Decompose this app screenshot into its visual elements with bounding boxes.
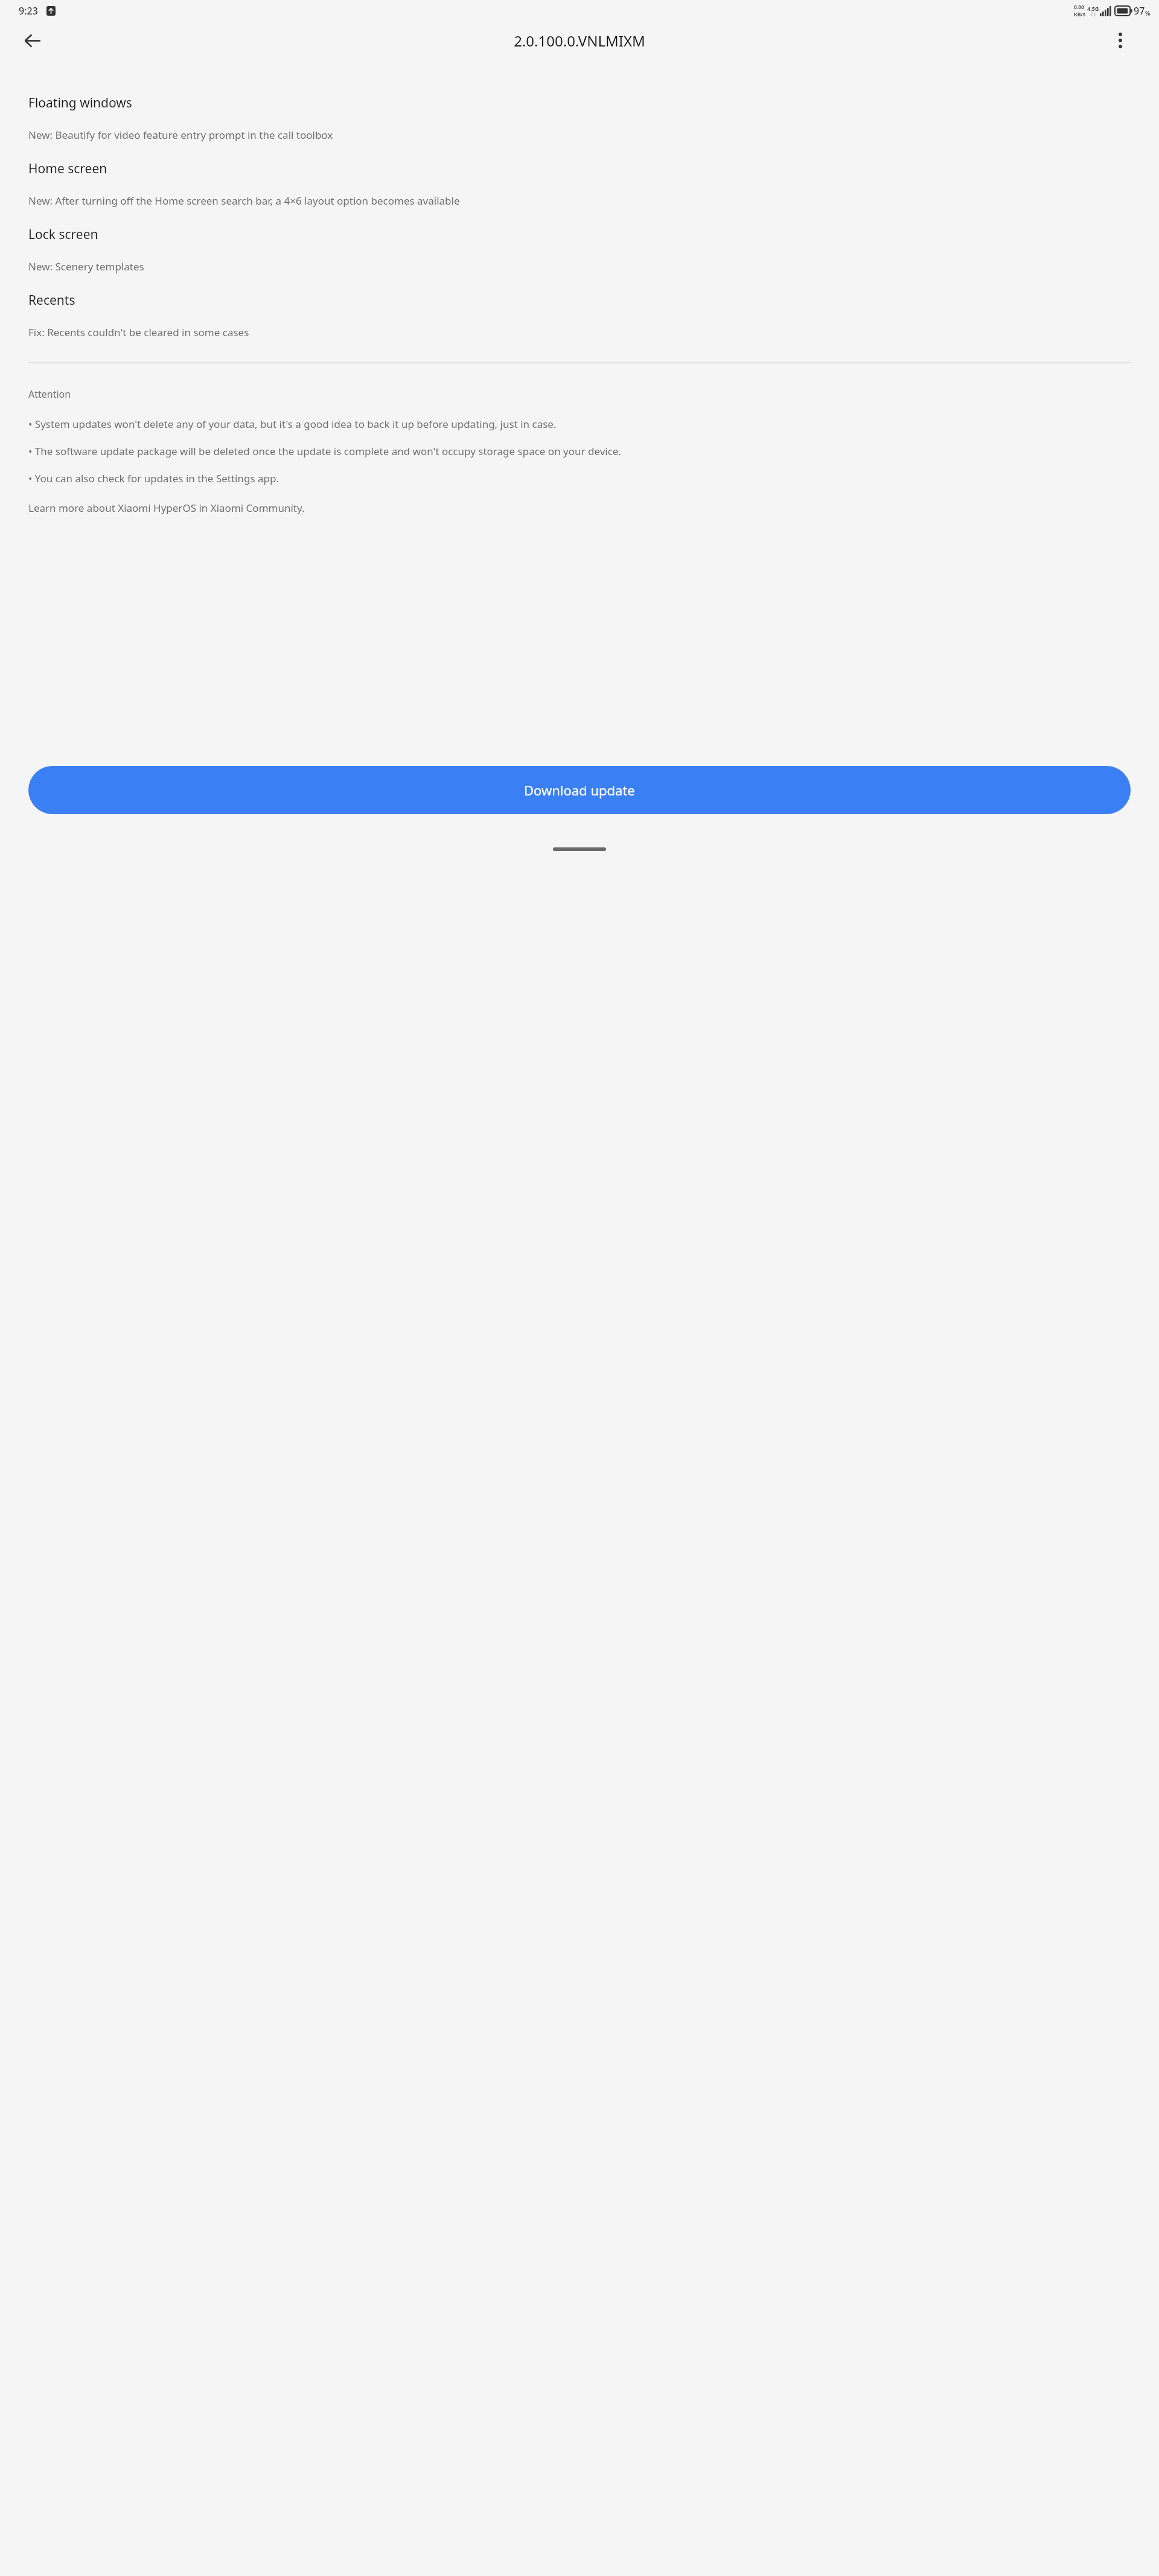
button[interactable]: Download update: [28, 766, 1131, 814]
staticText: Learn more about Xiaomi HyperOS in Xiaom…: [28, 501, 305, 515]
staticText: New: Beautify for video feature entry pr…: [28, 128, 333, 142]
staticText: 2.0.100.0.VNLMIXM: [514, 31, 645, 51]
staticText: • You can also check for updates in the …: [28, 471, 279, 485]
staticText: KB/s: [1074, 11, 1086, 18]
staticText: 9:23: [19, 4, 38, 18]
staticText: Download update: [524, 781, 635, 799]
staticText: Floating windows: [28, 94, 132, 112]
staticText: 97: [1134, 4, 1145, 18]
staticText: Recents: [28, 292, 75, 309]
staticText: Fix: Recents couldn't be cleared in some…: [28, 325, 249, 339]
staticText: 0.00: [1074, 4, 1084, 11]
staticText: New: Scenery templates: [28, 260, 144, 273]
staticText: Attention: [28, 387, 71, 401]
staticText: • The software update package will be de…: [28, 444, 621, 458]
staticText: 4.5G: [1087, 5, 1099, 12]
staticText: • System updates won't delete any of you…: [28, 417, 557, 431]
staticText: Home screen: [28, 160, 107, 177]
staticText: %: [1145, 9, 1151, 18]
button[interactable]: Back: [17, 25, 47, 56]
staticText: New: After turning off the Home screen s…: [28, 194, 460, 208]
button[interactable]: More options: [1107, 27, 1134, 54]
staticText: Lock screen: [28, 226, 98, 243]
